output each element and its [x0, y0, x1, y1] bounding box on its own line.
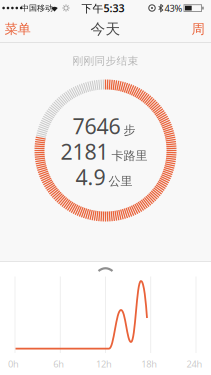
staticText: 7646 — [72, 112, 120, 140]
staticText: 步 — [123, 123, 135, 138]
staticText: 菜单 — [4, 21, 30, 37]
staticText: 18h — [141, 358, 157, 370]
staticText: 公里 — [108, 174, 132, 189]
staticText: 卡路里 — [111, 148, 147, 163]
staticText: 6h — [53, 358, 64, 370]
staticText: 4.9 — [75, 163, 105, 191]
staticText: 43% — [164, 2, 182, 14]
button[interactable]: 周 — [184, 15, 211, 43]
staticText: 2181 — [60, 137, 108, 166]
staticText: 今天 — [90, 20, 120, 38]
staticText: 下午5:33 — [81, 1, 124, 15]
staticText: 0h — [8, 358, 19, 370]
staticText: 24h — [186, 358, 202, 370]
staticText: 中国移动 — [21, 3, 53, 13]
staticText: 刚刚同步结束 — [72, 54, 138, 67]
button[interactable]: 展开图表 — [96, 264, 115, 274]
button[interactable]: 菜单 — [0, 15, 37, 43]
staticText: 12h — [96, 358, 112, 370]
staticText: 周 — [191, 21, 204, 37]
